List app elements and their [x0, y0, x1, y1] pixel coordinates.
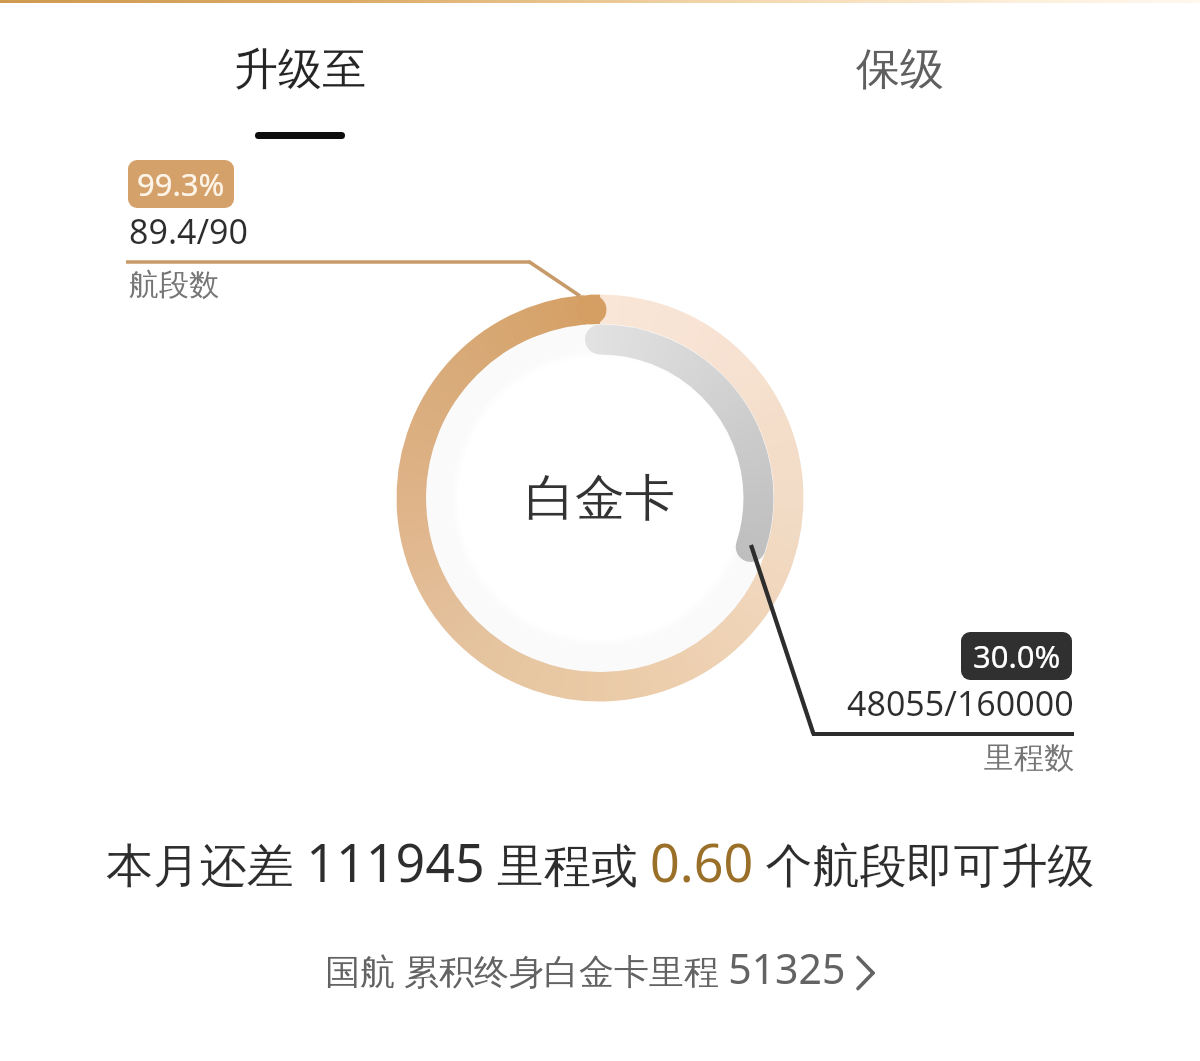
- staticText: 升级至: [234, 42, 366, 97]
- other: 查看终身里程详情: [856, 955, 876, 991]
- staticText: 30.0%: [973, 635, 1061, 677]
- staticText: 本月还差 111945 里程或 0.60 个航段即可升级: [106, 826, 1095, 897]
- staticText: 国航 累积终身白金卡里程 51325: [325, 940, 846, 996]
- staticText: 航段数: [129, 266, 219, 304]
- staticText: 保级: [856, 42, 944, 97]
- button[interactable]: 30.0%: [961, 632, 1072, 680]
- staticText: 白金卡: [525, 467, 675, 530]
- button[interactable]: 99.3%: [128, 160, 234, 208]
- staticText: 里程数: [984, 739, 1074, 777]
- staticText: 48055/160000: [847, 680, 1074, 724]
- staticText: 99.3%: [137, 163, 225, 205]
- staticText: 89.4/90: [129, 208, 248, 252]
- button[interactable]: 保级: [600, 0, 1200, 150]
- button[interactable]: 国航 累积终身白金卡里程 51325: [325, 940, 876, 996]
- button[interactable]: 升级至: [0, 0, 600, 150]
